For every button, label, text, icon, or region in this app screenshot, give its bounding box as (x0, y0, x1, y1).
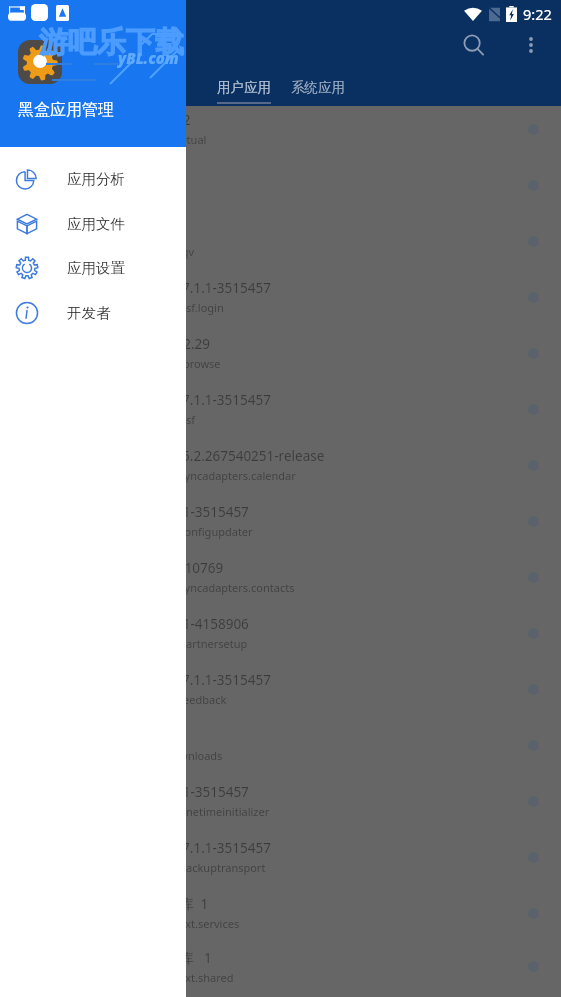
staticText: 9:22 (523, 4, 552, 24)
staticText: com.google.android.syncadapters.contacts (72, 580, 295, 595)
staticText: Chrome 64.0.3282.29 (72, 335, 210, 353)
staticText: 合作伙伴设置 7.1.1-4158906 (72, 615, 249, 633)
staticText: com.google.android.gsf (72, 412, 196, 427)
staticText: 通讯录同步 5.2.3910769 (72, 559, 224, 577)
button[interactable]: 黑盒应用管理 1.0.2 (0, 101, 561, 157)
staticText: 用户应用 (217, 79, 271, 96)
staticText: com.google.android.syncadapters.calendar (72, 468, 296, 483)
staticText: 应用分析 (67, 170, 125, 188)
staticText: yBL.com (118, 48, 179, 68)
button[interactable]: Android 共享资源库 1 (0, 941, 561, 992)
staticText: com.google.android.onetimeinitializer (72, 804, 270, 819)
button[interactable]: 系统应用 (268, 65, 368, 106)
staticText: 开发者 (67, 304, 111, 322)
button[interactable]: Google 服务框架 7.1.1-3515457 (0, 381, 561, 437)
staticText: Android 系统服务库 1 (72, 895, 209, 913)
staticText: Google 服务框架 7.1.1-3515457 (72, 391, 271, 409)
staticText: com.google.android.ext.services (72, 916, 240, 931)
button[interactable]: Google 服务框架 7.1.1-3515457 (0, 269, 561, 325)
staticText: 应用设置 (67, 259, 125, 277)
button[interactable]: 通讯录同步 5.2.3910769 (0, 549, 561, 605)
staticText: Google 市场反馈 7.1.1-3515457 (72, 671, 271, 689)
button[interactable]: 用户应用 (194, 65, 294, 106)
staticText: com.google.android.backuptransport (72, 860, 266, 875)
staticText: 黑盒应用管理 (18, 100, 114, 120)
button[interactable]: 配置更新程序 7.1.1-3515457 (0, 493, 561, 549)
staticText: com.android.chrome.browse (72, 356, 221, 371)
button[interactable]: Android 系统服务库 1 (0, 885, 561, 941)
button[interactable]: 合作伙伴设置 7.1.1-4158906 (0, 605, 561, 661)
button[interactable]: Google 备份传输 7.1.1-3515457 (0, 829, 561, 885)
button[interactable]: 应用文件 (0, 201, 186, 246)
button[interactable]: 相机 2.0.002 (0, 213, 561, 269)
staticText: Google 备份传输 7.1.1-3515457 (72, 839, 271, 857)
staticText: com.android.camera.qv (72, 244, 195, 259)
staticText: com.blackbox.appv.virtual (72, 132, 207, 147)
button[interactable]: Google 市场反馈 7.1.1-3515457 (0, 661, 561, 717)
staticText: 游吧乐下载 (39, 24, 184, 61)
button[interactable]: Google 日历同步 5.2.267540251-release (0, 437, 561, 493)
staticText: 系统应用 (291, 79, 345, 96)
staticText: 配置更新程序 7.1.1-3515457 (72, 503, 249, 521)
staticText: 应用文件 (67, 215, 125, 233)
button[interactable]: 开发者 (0, 290, 186, 335)
staticText: Android 共享资源库 1 (72, 949, 212, 967)
button[interactable]: Chrome 64.0.3282.29 (0, 325, 561, 381)
staticText: Google 日历同步 5.2.267540251-release (72, 447, 325, 465)
staticText: 一次性初始化 7.1.1-3515457 (72, 783, 249, 801)
button[interactable]: Search (450, 21, 498, 69)
button[interactable]: 一次性初始化 7.1.1-3515457 (0, 773, 561, 829)
button[interactable]: 应用设置 (0, 245, 186, 290)
staticText: 系统界面 7.1.1 (72, 167, 164, 185)
staticText: 相机 2.0.002 (72, 223, 152, 241)
staticText: com.google.android.ext.shared (72, 970, 234, 985)
staticText: com.google.android.gsf.login (72, 300, 224, 315)
staticText: 黑盒应用管理 1.0.2 (72, 111, 191, 129)
staticText: com.android.prov.downloads (72, 748, 223, 763)
button[interactable]: More options (507, 21, 555, 69)
staticText: Google 服务框架 7.1.1-3515457 (72, 279, 271, 297)
button[interactable]: 下载管理器 7.1.1 (0, 717, 561, 773)
staticText: com.google.android.feedback (72, 692, 227, 707)
staticText: com.google.android.partnersetup (72, 636, 248, 651)
button[interactable]: 应用分析 (0, 156, 186, 201)
button[interactable]: 系统界面 7.1.1 (0, 157, 561, 213)
staticText: com.google.android.configupdater (72, 524, 253, 539)
